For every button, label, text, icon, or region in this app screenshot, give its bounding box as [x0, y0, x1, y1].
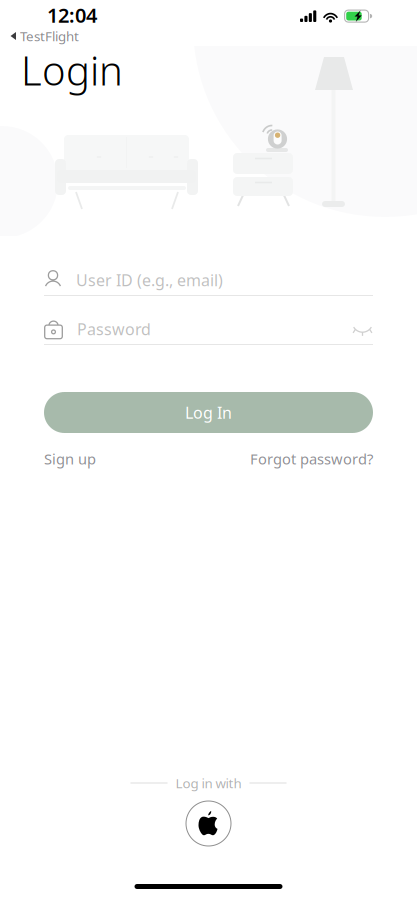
staticText: Password — [77, 318, 151, 340]
staticText: 12:04 — [47, 2, 97, 28]
button[interactable]: Log In — [44, 392, 373, 433]
button[interactable]: Sign up — [44, 449, 96, 468]
staticText: Forgot password? — [250, 449, 373, 468]
staticText: Log in with — [175, 774, 241, 792]
staticText: User ID (e.g., email) — [76, 269, 223, 291]
button[interactable]: Sign in with Apple — [186, 801, 231, 846]
staticText: TestFlight — [20, 27, 79, 45]
staticText: Log In — [185, 402, 232, 423]
button[interactable]: Show password — [352, 321, 373, 336]
button[interactable]: Forgot password? — [250, 449, 373, 468]
staticText: Login — [21, 43, 123, 96]
staticText: Sign up — [44, 449, 96, 468]
